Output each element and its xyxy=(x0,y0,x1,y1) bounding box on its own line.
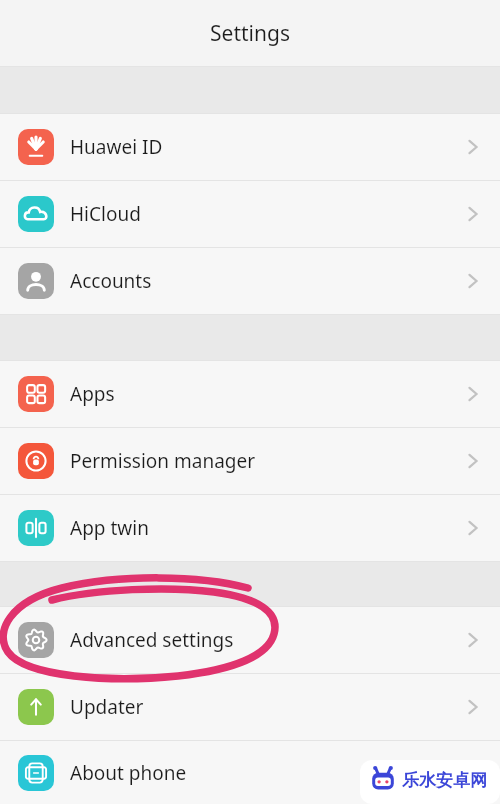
staticText: Settings xyxy=(210,19,290,48)
button[interactable]: Advanced settings xyxy=(0,607,500,673)
staticText: HiCloud xyxy=(70,201,141,227)
button[interactable]: App twin xyxy=(0,495,500,561)
staticText: 乐水安卓网 xyxy=(402,770,487,791)
staticText: Huawei ID xyxy=(70,134,163,160)
button[interactable]: Huawei ID xyxy=(0,114,500,180)
button[interactable]: Permission manager xyxy=(0,428,500,494)
staticText: About phone xyxy=(70,760,187,786)
button[interactable]: HiCloud xyxy=(0,181,500,247)
button[interactable]: Apps xyxy=(0,361,500,427)
staticText: Updater xyxy=(70,694,144,720)
button[interactable]: About phone xyxy=(0,741,500,804)
staticText: Advanced settings xyxy=(70,627,234,653)
staticText: App twin xyxy=(70,515,149,541)
button[interactable]: Updater xyxy=(0,674,500,740)
staticText: Permission manager xyxy=(70,448,256,474)
staticText: Accounts xyxy=(70,268,152,294)
button[interactable]: Accounts xyxy=(0,248,500,314)
staticText: Apps xyxy=(70,381,115,407)
